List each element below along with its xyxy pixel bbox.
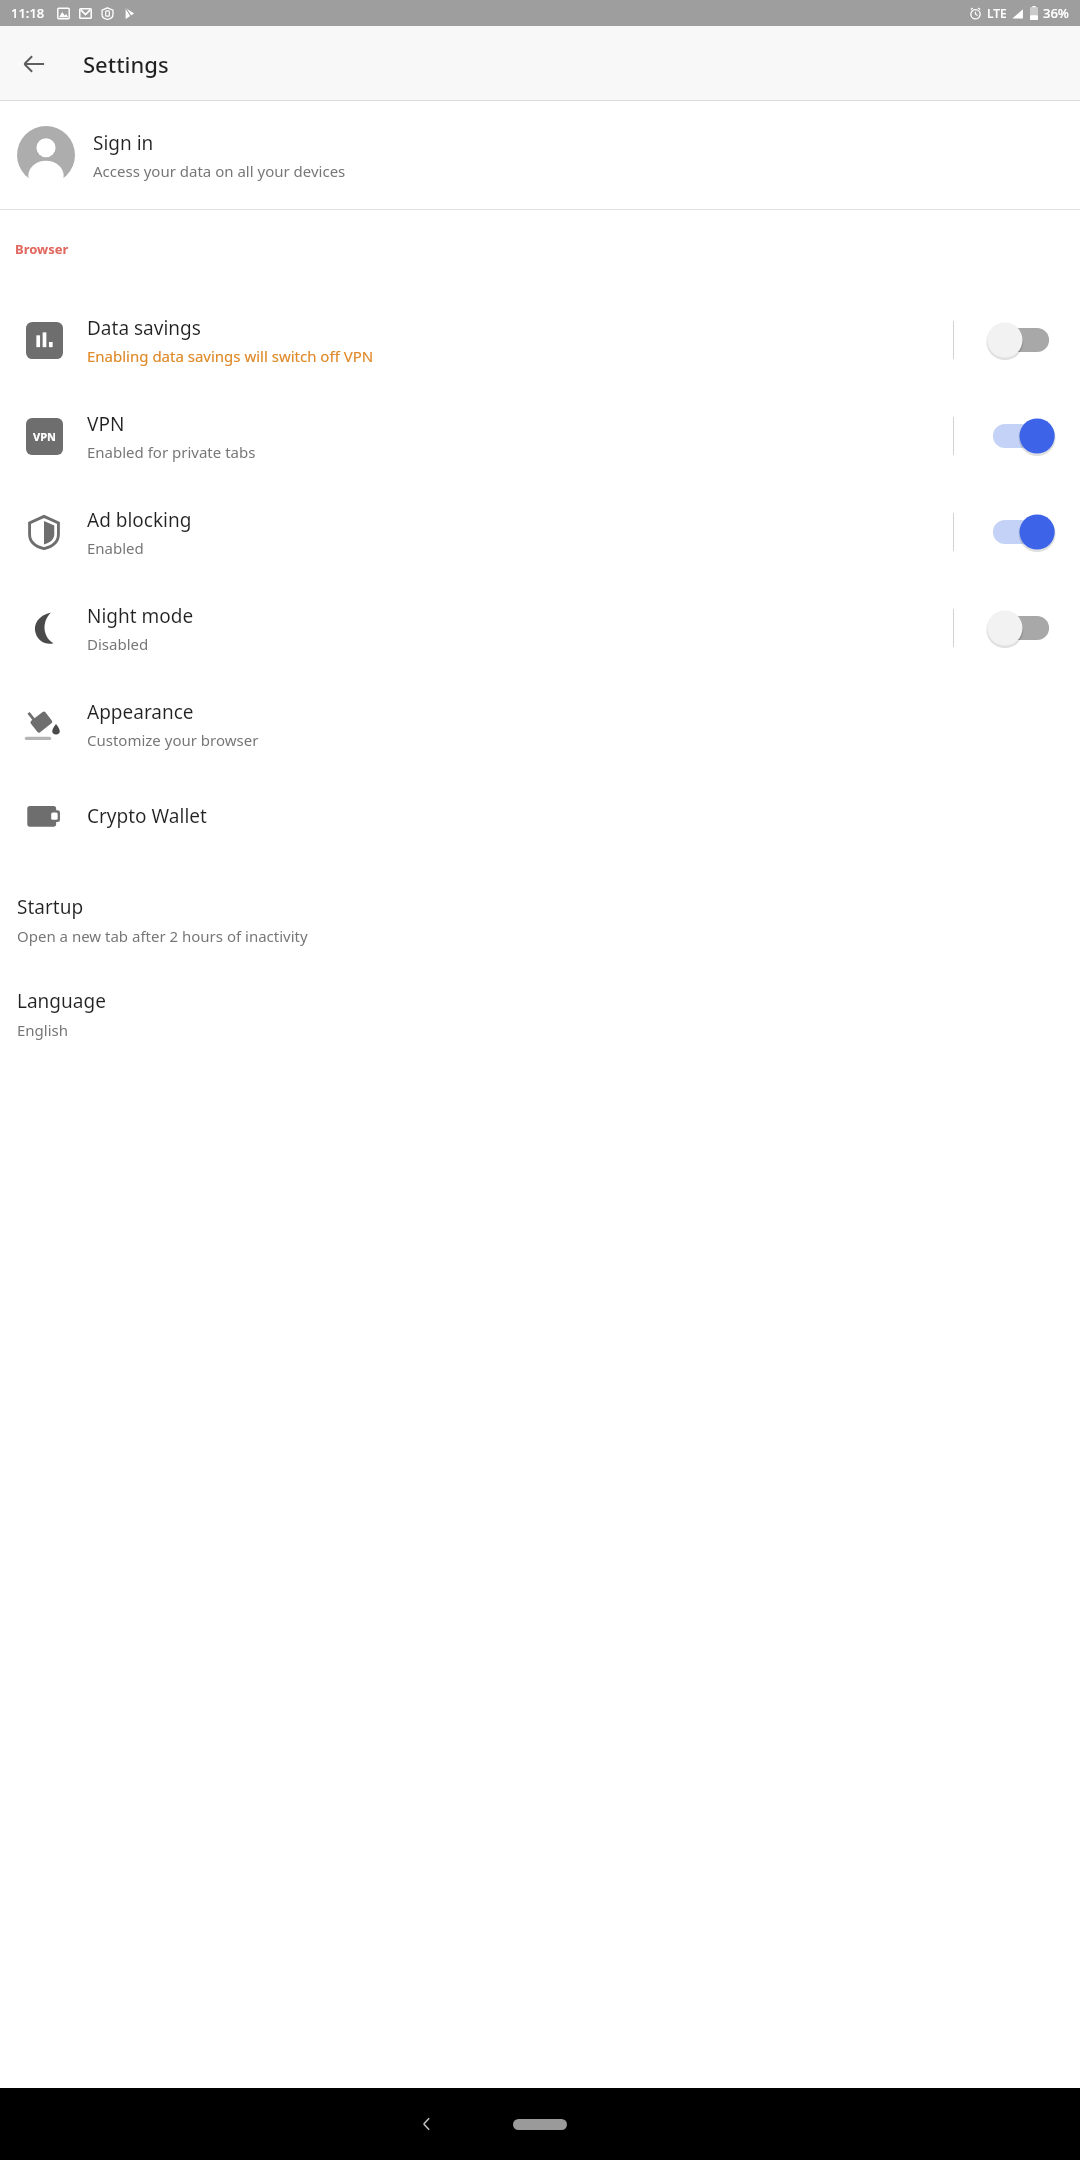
button[interactable]: Data savings xyxy=(0,292,1080,388)
staticText: 36% xyxy=(1043,4,1069,22)
staticText: Night mode xyxy=(87,603,194,629)
staticText: English xyxy=(17,1020,69,1040)
staticText: Crypto Wallet xyxy=(87,803,207,829)
staticText: Disabled xyxy=(87,634,149,654)
button[interactable]: Crypto Wallet xyxy=(0,772,1080,860)
button[interactable]: VPN xyxy=(0,388,1080,484)
staticText: Enabling data savings will switch off VP… xyxy=(87,346,374,366)
button[interactable]: Home xyxy=(505,2109,575,2139)
staticText: VPN xyxy=(33,429,56,444)
staticText: Language xyxy=(17,988,106,1014)
staticText: Customize your browser xyxy=(87,730,259,750)
staticText: Browser xyxy=(15,240,69,258)
staticText: Enabled for private tabs xyxy=(87,442,256,462)
staticText: VPN xyxy=(87,411,125,437)
staticText: Enabled xyxy=(87,538,144,558)
staticText: Sign in xyxy=(93,130,154,156)
staticText: Settings xyxy=(83,49,169,79)
staticText: Open a new tab after 2 hours of inactivi… xyxy=(17,926,308,946)
button[interactable]: Ad blocking xyxy=(0,484,1080,580)
button[interactable]: Startup xyxy=(0,886,1080,954)
button[interactable]: Back xyxy=(10,40,58,88)
button[interactable]: Ad blocking toggle xyxy=(962,497,1080,567)
button[interactable]: Data savings toggle xyxy=(962,305,1080,375)
button[interactable]: VPN toggle xyxy=(962,401,1080,471)
button[interactable]: Sign in xyxy=(0,101,1080,209)
button[interactable]: Language xyxy=(0,980,1080,1048)
staticText: Appearance xyxy=(87,699,194,725)
staticText: Access your data on all your devices xyxy=(93,161,346,181)
staticText: Startup xyxy=(17,894,84,920)
staticText: Data savings xyxy=(87,315,201,341)
staticText: Ad blocking xyxy=(87,507,192,533)
staticText: 11:18 xyxy=(11,4,45,22)
staticText: LTE xyxy=(987,5,1007,21)
button[interactable]: Back xyxy=(403,2100,451,2148)
button[interactable]: Appearance xyxy=(0,676,1080,772)
button[interactable]: Night mode xyxy=(0,580,1080,676)
button[interactable]: Night mode toggle xyxy=(962,593,1080,663)
